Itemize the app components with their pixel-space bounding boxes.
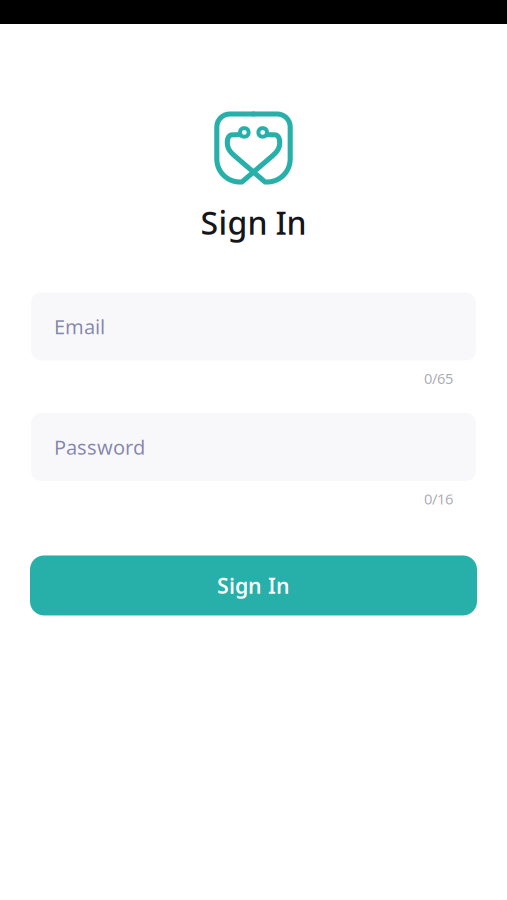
staticText: 0/16 <box>424 489 453 508</box>
button[interactable]: Sign In <box>30 555 477 615</box>
staticText: Email <box>54 313 105 340</box>
staticText: Password <box>54 434 145 460</box>
button[interactable]: Password <box>31 413 476 481</box>
button[interactable]: Email <box>31 292 476 360</box>
staticText: Sign In <box>200 201 306 243</box>
staticText: Sign In <box>217 571 290 600</box>
staticText: 0/65 <box>424 368 453 388</box>
